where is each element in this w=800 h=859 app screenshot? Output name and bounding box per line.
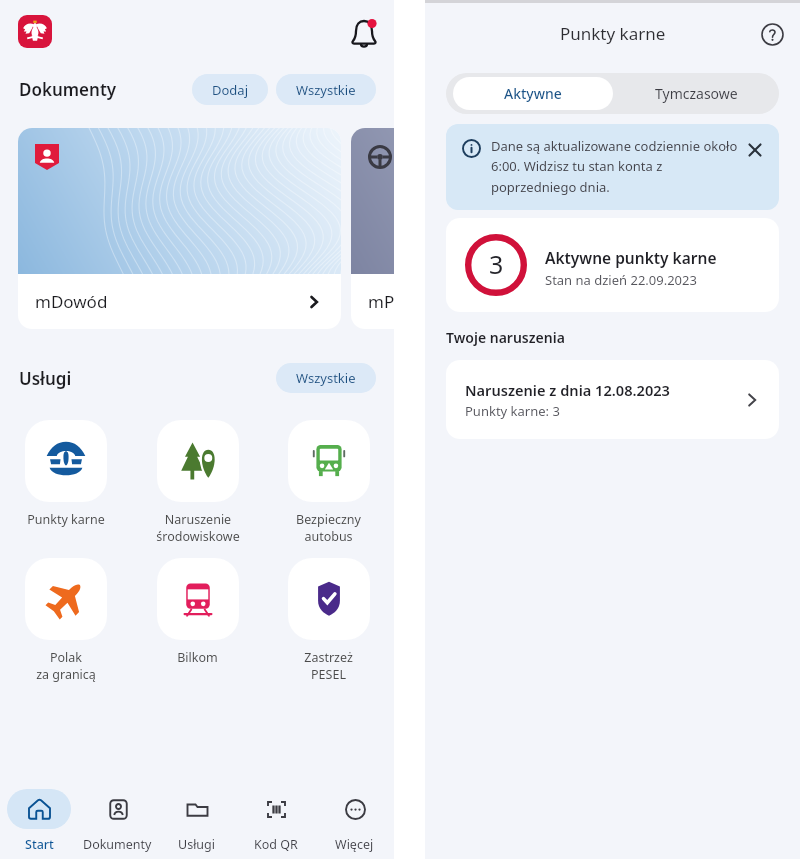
staticText: Punkty karne: 3 bbox=[465, 402, 560, 420]
button[interactable]: Zastrzeż PESEL bbox=[263, 558, 394, 683]
button[interactable]: Bezpieczny autobus bbox=[263, 420, 394, 545]
staticText: Stan na dzień 22.09.2023 bbox=[545, 271, 697, 289]
staticText: Naruszenie środowiskowe bbox=[156, 511, 240, 545]
button[interactable]: Logo bbox=[18, 15, 52, 48]
staticText: Kod QR bbox=[254, 836, 298, 853]
button[interactable]: Close bbox=[743, 138, 767, 162]
staticText: Dokumenty bbox=[83, 836, 152, 853]
staticText: Start bbox=[25, 836, 54, 853]
button[interactable]: 3 bbox=[446, 218, 779, 312]
staticText: Dodaj bbox=[212, 81, 248, 99]
button[interactable]: Tymczasowe bbox=[614, 73, 779, 114]
button[interactable]: Help bbox=[753, 15, 791, 53]
staticText: 3 bbox=[489, 247, 504, 281]
button[interactable]: Kod QR bbox=[236, 779, 315, 859]
button[interactable]: Dodaj bbox=[192, 74, 268, 105]
staticText: Twoje naruszenia bbox=[446, 328, 565, 347]
button[interactable]: Bilkom bbox=[132, 558, 263, 666]
button[interactable]: Punkty karne bbox=[0, 420, 132, 528]
button[interactable]: mPrawo jazdy bbox=[351, 128, 394, 329]
staticText: Bilkom bbox=[177, 649, 218, 666]
button[interactable]: Start bbox=[0, 779, 78, 859]
staticText: Dane są aktualizowane codziennie około 6… bbox=[491, 137, 739, 196]
button[interactable]: Dokumenty bbox=[78, 779, 157, 859]
staticText: Aktywne punkty karne bbox=[545, 247, 717, 268]
staticText: Dokumenty bbox=[19, 78, 117, 101]
staticText: Punkty karne bbox=[27, 511, 105, 528]
staticText: Polak za granicą bbox=[36, 649, 96, 683]
button[interactable]: Naruszenie środowiskowe bbox=[132, 420, 263, 545]
button[interactable]: Wszystkie bbox=[276, 363, 376, 393]
staticText: Naruszenie z dnia 12.08.2023 bbox=[465, 380, 670, 400]
staticText: Tymczasowe bbox=[655, 84, 738, 103]
staticText: Usługi bbox=[178, 836, 215, 853]
button[interactable]: Polak za granicą bbox=[0, 558, 132, 683]
button[interactable]: mDowód bbox=[18, 128, 341, 329]
staticText: Wszystkie bbox=[296, 369, 356, 387]
button[interactable]: Naruszenie z dnia 12.08.2023 bbox=[446, 360, 779, 439]
button[interactable]: Więcej bbox=[315, 779, 394, 859]
staticText: mDowód bbox=[35, 290, 108, 313]
button[interactable]: Wszystkie bbox=[276, 74, 376, 105]
button[interactable]: Aktywne bbox=[453, 77, 613, 110]
staticText: Aktywne bbox=[504, 84, 562, 103]
staticText: mPrawo jazdy bbox=[368, 290, 394, 313]
staticText: Wszystkie bbox=[296, 81, 356, 99]
staticText: Bezpieczny autobus bbox=[296, 511, 361, 545]
button[interactable]: Notifications bbox=[342, 10, 386, 54]
staticText: Zastrzeż PESEL bbox=[304, 649, 353, 683]
staticText: Punkty karne bbox=[560, 22, 666, 45]
button[interactable]: Usługi bbox=[157, 779, 236, 859]
staticText: Usługi bbox=[19, 367, 72, 390]
staticText: Więcej bbox=[335, 836, 374, 853]
